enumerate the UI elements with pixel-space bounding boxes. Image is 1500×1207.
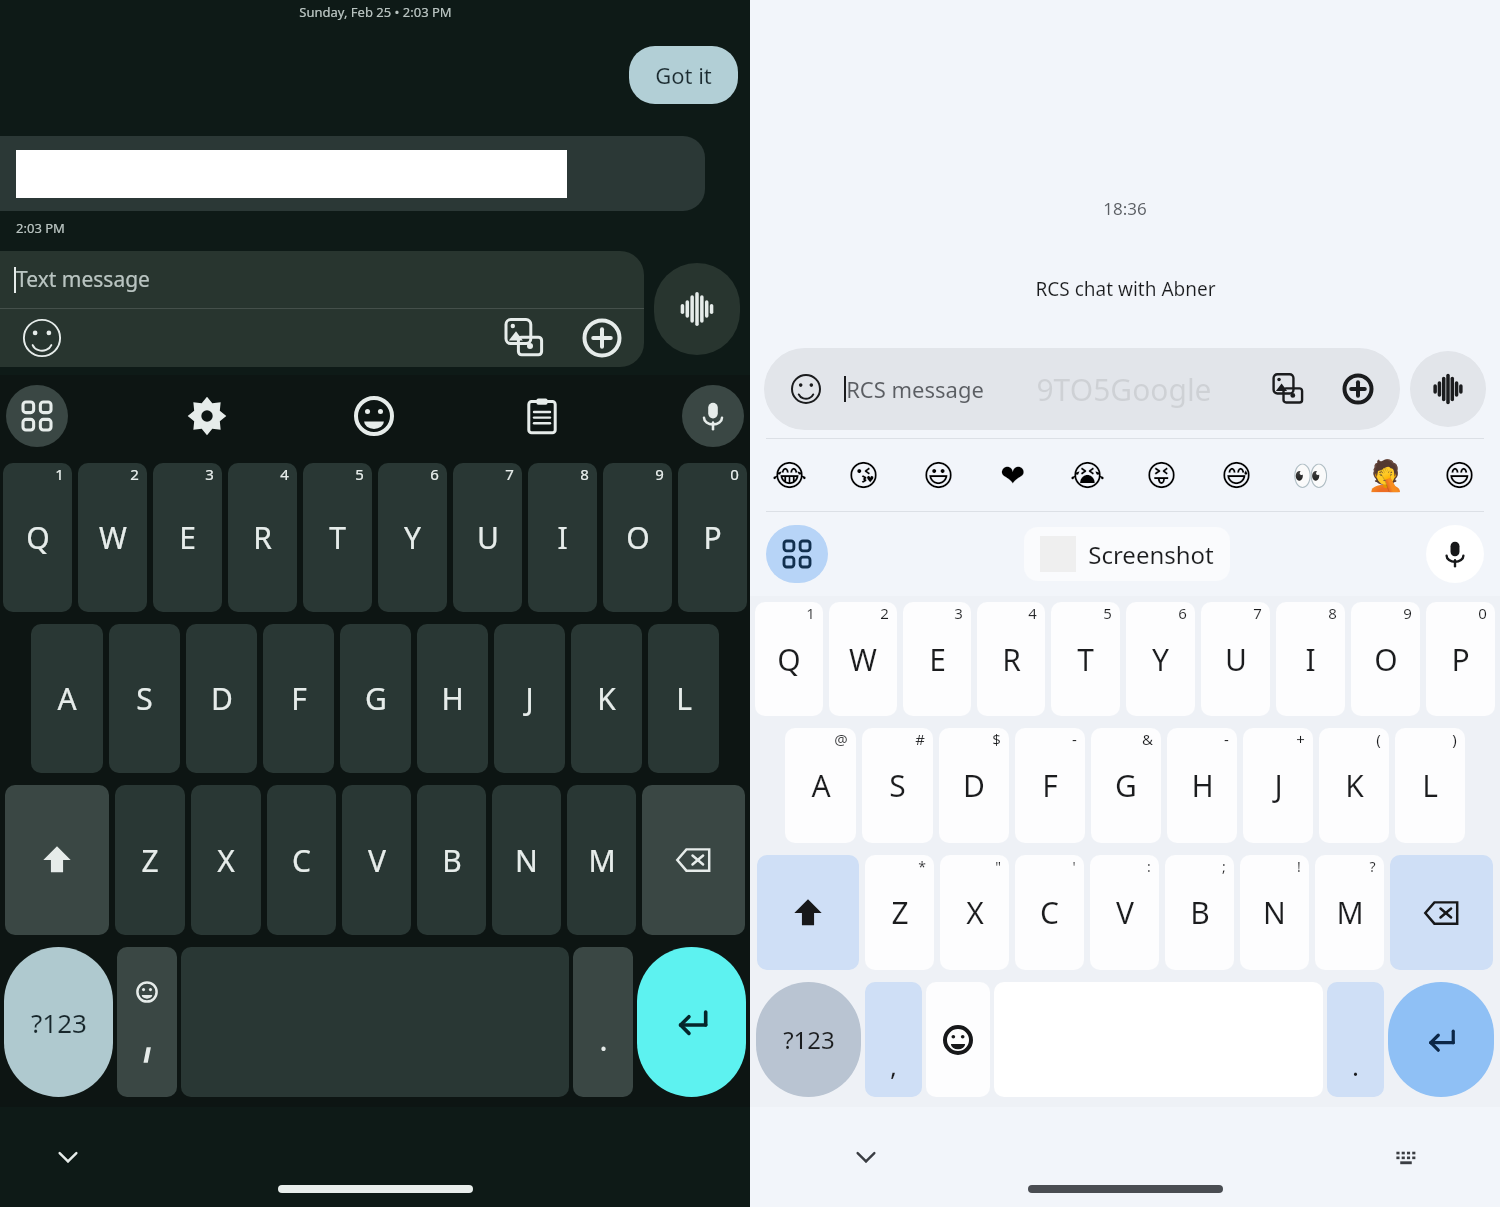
button[interactable]: D: [939, 728, 1009, 843]
button[interactable]: Shift: [757, 855, 859, 970]
button[interactable]: Apps: [766, 525, 828, 583]
button[interactable]: K: [571, 624, 642, 773]
button[interactable]: F: [1015, 728, 1085, 843]
button[interactable]: Screenshot: [1024, 527, 1230, 581]
button[interactable]: J: [494, 624, 565, 773]
button[interactable]: C: [1015, 855, 1084, 970]
button[interactable]: U: [453, 463, 522, 612]
button[interactable]: Emoji: [782, 365, 830, 413]
button[interactable]: 😝: [1136, 449, 1188, 501]
button[interactable]: G: [1091, 728, 1161, 843]
button[interactable]: Hide keyboard: [48, 1137, 88, 1177]
button[interactable]: Enter: [1388, 982, 1494, 1097]
button[interactable]: L: [648, 624, 719, 773]
button[interactable]: W: [829, 602, 897, 716]
button[interactable]: Gallery: [1264, 365, 1312, 413]
button[interactable]: P: [1426, 602, 1495, 716]
button[interactable]: Enter: [637, 947, 746, 1097]
button[interactable]: B: [417, 785, 486, 935]
button[interactable]: E: [903, 602, 971, 716]
button[interactable]: J: [1243, 728, 1313, 843]
button[interactable]: ?123: [4, 947, 113, 1097]
button[interactable]: S: [862, 728, 933, 843]
button[interactable]: S: [109, 624, 180, 773]
button[interactable]: Got it: [629, 46, 738, 104]
button[interactable]: ?123: [756, 982, 861, 1097]
button[interactable]: Voice typing: [1426, 525, 1484, 583]
button[interactable]: K: [1319, 728, 1389, 843]
button[interactable]: H: [1167, 728, 1237, 843]
button[interactable]: I: [1276, 602, 1345, 716]
button[interactable]: V: [1090, 855, 1159, 970]
button[interactable]: .: [1327, 982, 1384, 1097]
button[interactable]: T: [1051, 602, 1120, 716]
button[interactable]: Emoji: [764, 348, 1400, 430]
button[interactable]: R: [977, 602, 1045, 716]
button[interactable]: Apps: [6, 385, 68, 447]
button[interactable]: H: [417, 624, 488, 773]
button[interactable]: U: [1201, 602, 1270, 716]
button[interactable]: Z: [865, 855, 934, 970]
button[interactable]: L: [1395, 728, 1465, 843]
button[interactable]: T: [303, 463, 372, 612]
button[interactable]: P: [678, 463, 747, 612]
button[interactable]: 👀: [1285, 449, 1337, 501]
button[interactable]: Clipboard: [514, 388, 570, 444]
button[interactable]: A: [785, 728, 856, 843]
button[interactable]: Settings: [179, 388, 235, 444]
button[interactable]: .: [573, 947, 633, 1097]
button[interactable]: Voice typing: [682, 385, 744, 447]
button[interactable]: ❤️: [987, 449, 1039, 501]
button[interactable]: Emoji and comma: [117, 947, 177, 1097]
button[interactable]: 😃: [913, 449, 965, 501]
button[interactable]: Switch keyboard: [1388, 1139, 1424, 1175]
button[interactable]: C: [267, 785, 336, 935]
button[interactable]: X: [940, 855, 1009, 970]
button[interactable]: Gallery: [496, 310, 552, 366]
button[interactable]: 🤦: [1360, 449, 1412, 501]
button[interactable]: Backspace: [1390, 855, 1493, 970]
button[interactable]: 😅: [1211, 449, 1263, 501]
button[interactable]: G: [340, 624, 411, 773]
button[interactable]: [0, 136, 705, 211]
button[interactable]: 😘: [838, 449, 890, 501]
button[interactable]: Hide keyboard: [846, 1137, 886, 1177]
button[interactable]: Attach: [574, 310, 630, 366]
button[interactable]: F: [263, 624, 334, 773]
button[interactable]: Y: [1126, 602, 1195, 716]
button[interactable]: O: [1351, 602, 1420, 716]
button[interactable]: X: [191, 785, 261, 935]
button[interactable]: Q: [755, 602, 823, 716]
button[interactable]: Backspace: [642, 785, 745, 935]
button[interactable]: Emoji: [926, 982, 990, 1097]
button[interactable]: M: [1315, 855, 1384, 970]
button[interactable]: E: [153, 463, 222, 612]
button[interactable]: Attach: [1334, 365, 1382, 413]
button[interactable]: Stickers: [346, 388, 402, 444]
button[interactable]: Q: [3, 463, 72, 612]
button[interactable]: D: [186, 624, 257, 773]
button[interactable]: A: [31, 624, 103, 773]
button[interactable]: Shift: [5, 785, 109, 935]
button[interactable]: ,: [865, 982, 922, 1097]
button[interactable]: Y: [378, 463, 447, 612]
button[interactable]: Text message: [0, 251, 644, 367]
button[interactable]: N: [492, 785, 561, 935]
button[interactable]: N: [1240, 855, 1309, 970]
button[interactable]: V: [342, 785, 411, 935]
button[interactable]: I: [528, 463, 597, 612]
button[interactable]: B: [1165, 855, 1234, 970]
button[interactable]: 😄: [1434, 449, 1486, 501]
button[interactable]: Emoji: [14, 310, 70, 366]
button[interactable]: O: [603, 463, 672, 612]
button[interactable]: 😭: [1062, 449, 1114, 501]
button[interactable]: R: [228, 463, 297, 612]
button[interactable]: M: [567, 785, 636, 935]
button[interactable]: 😂: [764, 449, 816, 501]
button[interactable]: W: [78, 463, 147, 612]
button[interactable]: Voice message: [1410, 351, 1486, 427]
button[interactable]: Voice message: [654, 263, 740, 355]
button[interactable]: Z: [115, 785, 185, 935]
